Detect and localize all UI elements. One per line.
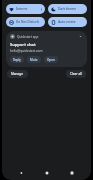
button[interactable]: Mute bbox=[27, 56, 41, 63]
button[interactable]: Home bbox=[40, 166, 54, 180]
staticText: Mute bbox=[30, 58, 38, 62]
staticText: hello@quickstart.com bbox=[10, 49, 43, 53]
staticText: Manage bbox=[11, 72, 24, 76]
staticText: Quickstart app bbox=[17, 35, 39, 39]
staticText: Reply bbox=[13, 58, 21, 62]
staticText: Auto-rotate bbox=[58, 20, 76, 24]
staticText: Open bbox=[47, 58, 55, 62]
button[interactable]: Recent apps bbox=[65, 166, 79, 180]
button[interactable]: Open bbox=[44, 56, 58, 63]
button[interactable]: Auto-rotate bbox=[48, 17, 87, 27]
button[interactable]: Back bbox=[14, 166, 28, 180]
button[interactable]: Reply bbox=[10, 56, 24, 63]
button[interactable]: Dark theme bbox=[48, 4, 87, 14]
button[interactable]: Clear all bbox=[66, 70, 86, 78]
staticText: Dark theme bbox=[58, 7, 77, 11]
staticText: Internet bbox=[16, 7, 28, 11]
staticText: Do Not Disturb bbox=[16, 20, 39, 24]
button[interactable]: Collapse notification bbox=[78, 34, 83, 39]
staticText: Clear all bbox=[70, 72, 82, 76]
button[interactable]: Do Not Disturb bbox=[6, 17, 45, 27]
staticText: Support chat bbox=[10, 42, 36, 47]
button[interactable]: Manage bbox=[7, 70, 28, 78]
button[interactable]: Internet bbox=[6, 4, 45, 14]
button[interactable]: Quickstart app bbox=[6, 31, 87, 67]
